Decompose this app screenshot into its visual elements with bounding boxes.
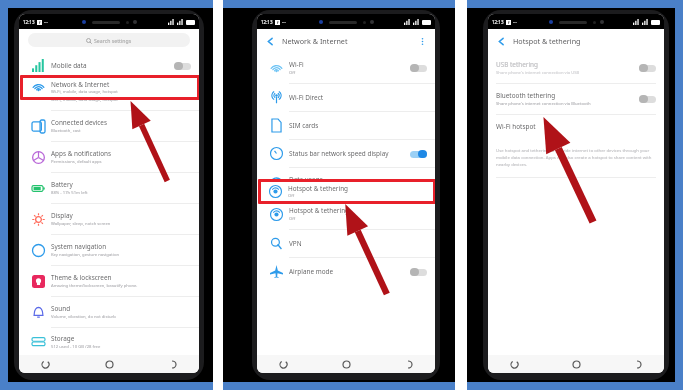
button[interactable]: Theme & lockscreen xyxy=(19,266,199,297)
staticText: Connected devices xyxy=(51,118,108,127)
button[interactable]: Display xyxy=(19,204,199,235)
staticText: Search settings xyxy=(94,37,132,44)
staticText: f xyxy=(277,20,279,25)
staticText: 12:13 xyxy=(261,19,273,25)
button[interactable]: Back xyxy=(168,360,177,369)
staticText: ··· xyxy=(513,19,517,25)
staticText: Key navigation, gesture navigation xyxy=(51,252,120,258)
button[interactable]: Home xyxy=(105,360,114,369)
staticText: Share phone's internet connection via Bl… xyxy=(496,101,591,107)
staticText: Off xyxy=(289,70,296,76)
staticText: Storage xyxy=(51,334,75,343)
staticText: SIM cards xyxy=(289,121,319,130)
button[interactable]: Wi-Fi xyxy=(257,53,435,84)
staticText: 88% - 17h 51m left xyxy=(51,190,88,196)
button[interactable] xyxy=(639,95,656,103)
staticText: System navigation xyxy=(51,242,107,251)
staticText: Display xyxy=(51,211,73,220)
button[interactable]: Recent apps xyxy=(279,360,288,369)
staticText: Data usage xyxy=(289,175,323,184)
staticText: Airplane mode xyxy=(289,267,334,276)
staticText: Off xyxy=(289,216,296,222)
staticText: Wi-Fi, mobile, data usage, hotspot xyxy=(51,97,118,103)
staticText: Hotspot & tethering xyxy=(513,36,581,46)
button[interactable]: Battery xyxy=(19,173,199,204)
button[interactable]: Network & Internet xyxy=(19,80,199,111)
button[interactable]: VPN xyxy=(257,230,435,258)
staticText: Off xyxy=(288,193,295,199)
staticText: f xyxy=(39,20,41,25)
staticText: Wi-Fi hotspot xyxy=(496,122,536,131)
staticText: Use hotspot and tethering to provide int… xyxy=(496,147,656,167)
button[interactable]: Search settings xyxy=(28,33,190,47)
staticText: Wi-Fi Direct xyxy=(289,93,324,102)
button[interactable] xyxy=(639,64,656,72)
button[interactable]: Wi-Fi Direct xyxy=(257,84,435,112)
staticText: Volume, vibration, do not disturb xyxy=(51,314,116,320)
button[interactable]: Airplane mode xyxy=(257,258,435,285)
button[interactable]: Home xyxy=(342,360,351,369)
staticText: Battery xyxy=(51,180,73,189)
button[interactable] xyxy=(410,64,427,72)
staticText: ··· xyxy=(44,19,48,25)
staticText: USB tethering xyxy=(496,60,538,69)
staticText: Bluetooth tethering xyxy=(496,91,556,100)
staticText: VPN xyxy=(289,239,302,248)
button[interactable]: Sound xyxy=(19,297,199,328)
button[interactable]: Wi-Fi hotspot xyxy=(488,115,664,137)
staticText: 512 used - 10 GB /28 free xyxy=(51,344,101,350)
button[interactable] xyxy=(410,268,427,276)
button[interactable]: System navigation xyxy=(19,235,199,266)
button[interactable]: USB tethering xyxy=(488,53,664,84)
staticText: Status bar network speed display xyxy=(289,149,389,158)
staticText: Hotspot & tethering xyxy=(288,184,349,193)
staticText: ··· xyxy=(282,19,286,25)
button[interactable]: Mobile data xyxy=(19,52,199,80)
staticText: Theme & lockscreen xyxy=(51,273,112,282)
button[interactable]: Back xyxy=(404,360,413,369)
button[interactable]: Back xyxy=(494,34,508,48)
button[interactable]: Home xyxy=(572,360,581,369)
button[interactable]: Recent apps xyxy=(41,360,50,369)
staticText: Permissions, default apps xyxy=(51,159,102,165)
staticText: Apps & notifications xyxy=(51,149,112,158)
staticText: 0 B of data used xyxy=(289,185,321,191)
button[interactable]: Back xyxy=(633,360,642,369)
staticText: Bluetooth, cast xyxy=(51,128,81,134)
button[interactable]: Data usage xyxy=(257,168,435,199)
button[interactable]: Status bar network speed display xyxy=(257,140,435,168)
staticText: Mobile data xyxy=(51,61,87,70)
button[interactable]: Recent apps xyxy=(510,360,519,369)
button[interactable]: Back xyxy=(263,34,277,48)
staticText: Wi-Fi xyxy=(289,60,304,69)
staticText: Network & Internet xyxy=(282,36,348,46)
button[interactable] xyxy=(410,150,427,158)
staticText: Hotspot & tethering xyxy=(289,206,350,215)
button[interactable]: Connected devices xyxy=(19,111,199,142)
button[interactable]: Storage xyxy=(19,328,199,355)
staticText: Network & Internet xyxy=(51,80,110,89)
staticText: f xyxy=(508,20,510,25)
staticText: Wallpaper, sleep, notch screen xyxy=(51,221,111,227)
button[interactable]: More options xyxy=(416,35,428,47)
button[interactable]: Apps & notifications xyxy=(19,142,199,173)
staticText: Amazing theme/lockscreen, beautify phone… xyxy=(51,283,138,289)
staticText: Wi-Fi, mobile, data usage, hotspot xyxy=(51,89,118,95)
button[interactable]: SIM cards xyxy=(257,112,435,140)
staticText: 12:13 xyxy=(23,19,35,25)
button[interactable] xyxy=(174,62,191,70)
button[interactable]: Bluetooth tethering xyxy=(488,84,664,115)
staticText: 12:13 xyxy=(492,19,504,25)
staticText: Sound xyxy=(51,304,71,313)
staticText: Network & Internet xyxy=(51,87,110,96)
button[interactable]: Hotspot & tethering xyxy=(257,199,435,230)
staticText: Share phone's internet connection via US… xyxy=(496,70,580,76)
